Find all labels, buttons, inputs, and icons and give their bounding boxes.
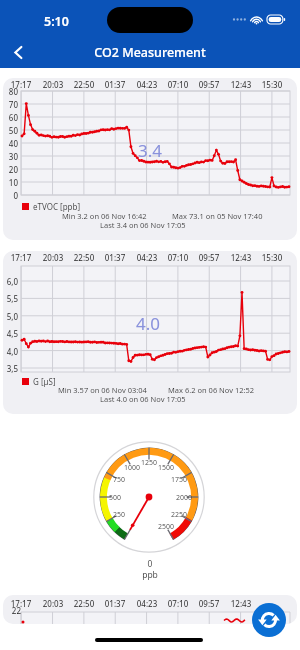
- staticText: Last 3.4 on 06 Nov 17:05: [100, 220, 186, 230]
- staticText: 12:43: [226, 598, 256, 609]
- staticText: 500: [103, 493, 127, 503]
- staticText: 12:43: [226, 252, 256, 263]
- staticText: 6,0: [3, 276, 18, 287]
- staticText: ppb: [0, 569, 300, 581]
- staticText: 50: [3, 125, 18, 136]
- staticText: 4,0: [3, 346, 18, 357]
- staticText: 17:17: [6, 252, 36, 263]
- staticText: 01:37: [100, 598, 130, 609]
- staticText: 12:43: [226, 79, 256, 90]
- staticText: 22:50: [69, 598, 99, 609]
- staticText: 0: [3, 190, 18, 201]
- staticText: 04:23: [132, 252, 162, 263]
- staticText: 1500: [154, 463, 178, 473]
- staticText: 09:57: [194, 79, 224, 90]
- staticText: Max 6.2 on 06 Nov 12:52: [168, 385, 255, 395]
- button[interactable]: Back: [2, 36, 34, 68]
- staticText: 09:57: [194, 252, 224, 263]
- staticText: 22:50: [69, 79, 99, 90]
- staticText: 04:23: [132, 79, 162, 90]
- staticText: 01:37: [100, 252, 130, 263]
- staticText: 20:03: [38, 598, 68, 609]
- staticText: 15:30: [257, 79, 287, 90]
- button[interactable]: 17:17: [3, 595, 297, 624]
- staticText: 07:10: [163, 252, 193, 263]
- staticText: 250: [107, 510, 131, 520]
- staticText: 20:03: [38, 79, 68, 90]
- staticText: 2000: [172, 493, 196, 503]
- button[interactable]: 17:17: [3, 78, 297, 240]
- staticText: 17:17: [6, 598, 36, 609]
- button[interactable]: Refresh: [252, 603, 286, 637]
- staticText: 5,0: [3, 311, 18, 322]
- staticText: Min 3.57 on 06 Nov 03:04: [58, 385, 147, 395]
- staticText: 20:03: [38, 252, 68, 263]
- staticText: 09:57: [194, 598, 224, 609]
- staticText: 40: [3, 138, 18, 149]
- staticText: 10: [3, 177, 18, 188]
- staticText: eTVOC [ppb]: [33, 201, 81, 212]
- staticText: 1750: [167, 475, 191, 485]
- staticText: 30: [3, 151, 18, 162]
- staticText: 01:37: [100, 79, 130, 90]
- staticText: 80: [3, 86, 18, 97]
- staticText: 1000: [120, 463, 144, 473]
- staticText: 3.4: [138, 139, 163, 162]
- staticText: CO2 Measurement: [0, 44, 300, 61]
- staticText: 3,5: [3, 363, 18, 374]
- staticText: 17:17: [6, 79, 36, 90]
- staticText: Min 3.2 on 06 Nov 16:42: [62, 211, 147, 221]
- staticText: 22: [3, 605, 21, 616]
- staticText: 70: [3, 99, 18, 110]
- staticText: 20: [3, 164, 18, 175]
- staticText: 750: [107, 475, 131, 485]
- staticText: Last 4.0 on 06 Nov 17:05: [100, 394, 186, 404]
- staticText: 07:10: [163, 79, 193, 90]
- staticText: 2500: [154, 522, 178, 532]
- staticText: 0: [0, 558, 300, 570]
- staticText: 07:10: [163, 598, 193, 609]
- staticText: 1250: [137, 458, 161, 468]
- staticText: 15:30: [257, 252, 287, 263]
- staticText: 04:23: [132, 598, 162, 609]
- staticText: 60: [3, 112, 18, 123]
- staticText: 5:10: [44, 13, 69, 30]
- staticText: 22:50: [69, 252, 99, 263]
- staticText: 2250: [167, 510, 191, 520]
- staticText: Max 73.1 on 05 Nov 17:40: [172, 211, 263, 221]
- staticText: 4.0: [136, 312, 161, 335]
- button[interactable]: 17:17: [3, 251, 297, 414]
- staticText: 4,5: [3, 328, 18, 339]
- staticText: G [µS]: [33, 376, 56, 387]
- staticText: 5,5: [3, 293, 18, 304]
